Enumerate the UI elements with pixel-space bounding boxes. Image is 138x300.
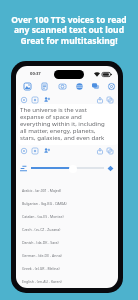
staticText: Danish - (da-DK - Sara) <box>22 240 59 245</box>
staticText: Bulgarian - (bg-BG - DARIA) <box>22 201 67 206</box>
button[interactable]: Bulgarian - (bg-BG - DARIA) <box>16 197 118 210</box>
button[interactable]: Greek - (el-GR - Melina) <box>16 262 118 275</box>
button[interactable]: Highlight mode <box>30 95 39 104</box>
staticText: The universe is the vast expanse of spac… <box>20 105 105 141</box>
button[interactable]: Share <box>95 146 104 155</box>
staticText: Czech - (cs-CZ - Zuzana) <box>22 227 61 232</box>
button[interactable]: Voice settings <box>19 95 28 104</box>
button[interactable]: Share <box>95 95 104 104</box>
staticText: Arabic - (ar-001 - Majed) <box>22 188 62 193</box>
button[interactable]: Scan document <box>39 81 49 91</box>
button[interactable]: Arabic - (ar-001 - Majed) <box>16 184 118 197</box>
button[interactable]: Catalan - (ca-ES - Montse) <box>16 210 118 223</box>
staticText: German - (de-DE - Anna) <box>22 253 62 258</box>
button[interactable]: Settings <box>106 81 116 91</box>
button[interactable]: Highlight mode <box>30 146 39 155</box>
button[interactable]: Czech - (cs-CZ - Zuzana) <box>16 223 118 236</box>
staticText: Greek - (el-GR - Melina) <box>22 266 60 271</box>
button[interactable]: Danish - (da-DK - Sara) <box>16 236 118 249</box>
button[interactable]: Speech speed <box>16 163 118 175</box>
button[interactable]: Translate <box>74 81 84 91</box>
button[interactable]: Copy <box>105 95 114 104</box>
staticText: 00:37 <box>30 71 41 77</box>
staticText: Catalan - (ca-ES - Montse) <box>22 214 64 219</box>
button[interactable]: Chat <box>90 81 100 91</box>
button[interactable]: Add voice <box>42 95 51 104</box>
button[interactable]: English - (en-AU - Karen) <box>16 275 118 288</box>
button[interactable]: German - (de-DE - Anna) <box>16 249 118 262</box>
button[interactable]: Gallery <box>22 81 32 91</box>
button[interactable]: Camera <box>57 81 67 91</box>
staticText: Over 100 TTS voices to read any scanned … <box>0 14 138 47</box>
button[interactable]: Copy <box>105 146 114 155</box>
button[interactable]: Add voice <box>42 146 51 155</box>
staticText: English - (en-AU - Karen) <box>22 279 62 284</box>
button[interactable]: Voice settings <box>19 146 28 155</box>
